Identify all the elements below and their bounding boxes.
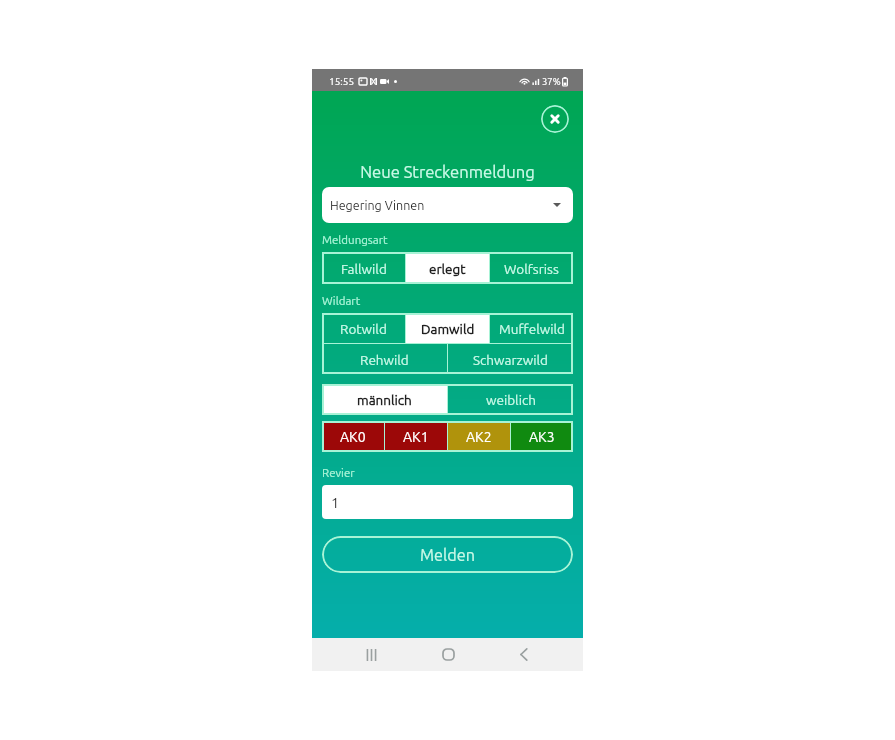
staticText: Meldungsart <box>322 233 388 246</box>
staticText: Rehwild <box>360 352 409 367</box>
button[interactable]: Recents <box>350 638 392 671</box>
staticText: AK2 <box>466 429 492 445</box>
button[interactable]: Muffelwild <box>490 313 573 343</box>
staticText: Neue Streckenmeldung <box>312 163 583 182</box>
button[interactable]: erlegt <box>406 252 489 284</box>
button[interactable]: Close <box>541 105 569 133</box>
button[interactable]: Damwild <box>406 313 489 343</box>
button[interactable]: Rehwild <box>322 344 447 374</box>
staticText: AK1 <box>403 429 429 445</box>
button[interactable]: Schwarzwild <box>448 344 573 374</box>
staticText: 15:55 <box>329 76 355 87</box>
button[interactable]: 1 <box>322 485 573 519</box>
staticText: Wildart <box>322 294 361 307</box>
staticText: AK3 <box>529 429 555 445</box>
button[interactable]: Back <box>503 638 545 671</box>
staticText: Fallwild <box>341 261 387 276</box>
staticText: weiblich <box>486 392 536 407</box>
button[interactable]: AK3 <box>511 421 573 452</box>
button[interactable]: weiblich <box>448 384 573 415</box>
button[interactable]: Rotwild <box>322 313 405 343</box>
staticText: 1 <box>331 494 340 510</box>
button[interactable]: Melden <box>322 536 573 573</box>
button[interactable]: männlich <box>322 384 447 415</box>
button[interactable]: Fallwild <box>322 252 405 284</box>
staticText: Schwarzwild <box>473 352 549 367</box>
staticText: Rotwild <box>340 321 387 336</box>
button[interactable]: Hegering Vinnen <box>322 187 573 223</box>
staticText: Damwild <box>421 321 475 336</box>
staticText: Revier <box>322 466 355 479</box>
button[interactable]: AK2 <box>448 421 510 452</box>
staticText: 37% <box>542 76 561 87</box>
button[interactable]: Wolfsriss <box>490 252 573 284</box>
staticText: erlegt <box>429 261 466 276</box>
staticText: AK0 <box>340 429 366 445</box>
staticText: Melden <box>420 546 475 564</box>
staticText: Muffelwild <box>499 321 565 336</box>
staticText: männlich <box>357 392 412 407</box>
staticText: Hegering Vinnen <box>330 198 425 212</box>
button[interactable]: AK1 <box>385 421 447 452</box>
staticText: Wolfsriss <box>504 261 559 276</box>
button[interactable]: AK0 <box>322 421 384 452</box>
button[interactable]: Home <box>427 638 469 671</box>
